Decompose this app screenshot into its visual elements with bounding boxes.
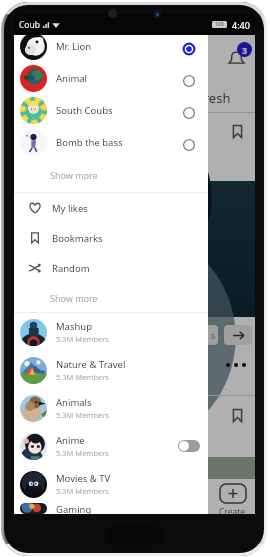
staticText: Fresh	[197, 89, 231, 107]
staticText: Bookmarks	[52, 232, 103, 245]
staticText: Show more	[50, 292, 98, 304]
staticText: Animals	[56, 396, 92, 409]
button[interactable]: Fresh	[191, 85, 237, 111]
button[interactable]: Mr. Lion	[14, 30, 208, 62]
button[interactable]: Nature & Travel	[14, 351, 208, 389]
staticText: Mr. Lion	[56, 40, 92, 53]
button[interactable]: Animal	[14, 62, 208, 94]
button[interactable]: Tags	[192, 325, 218, 345]
staticText: s	[211, 329, 216, 341]
staticText: 4:40	[232, 19, 250, 31]
button[interactable]: Bookmarks	[14, 223, 208, 253]
button[interactable]: Anime	[14, 427, 208, 465]
button[interactable]: Mashup	[14, 313, 208, 351]
staticText: My likes	[52, 202, 88, 215]
button[interactable]: Notifications	[224, 42, 254, 72]
staticText: 3	[242, 44, 248, 56]
staticText: Movies & TV	[56, 472, 111, 485]
staticText: Bomb the bass	[56, 136, 123, 149]
staticText: 5.3M Members	[56, 334, 109, 344]
button[interactable]: More options	[226, 358, 246, 372]
staticText: 5.3M Members	[56, 448, 109, 458]
button[interactable]: South Coubs	[14, 94, 208, 126]
staticText: Nature & Travel	[56, 358, 126, 371]
staticText: South Coubs	[56, 104, 113, 117]
staticText: 5.3M Members	[56, 410, 109, 420]
staticText: Coub	[19, 19, 40, 31]
button[interactable]: Bomb the bass	[14, 126, 208, 158]
staticText: Show more	[50, 169, 98, 181]
button[interactable]: Animals	[14, 389, 208, 427]
staticText: 100	[215, 21, 224, 28]
staticText: Random	[52, 262, 90, 275]
staticText: 5.3M Members	[56, 372, 109, 382]
button[interactable]: Movies & TV	[14, 465, 208, 503]
button[interactable]: Show more	[14, 158, 208, 192]
button[interactable]: Bookmark	[229, 123, 246, 140]
staticText: 5.3M Members	[56, 486, 109, 496]
button[interactable]: Random	[14, 253, 208, 283]
button[interactable]: Bookmark	[229, 407, 246, 424]
button[interactable]: Create	[219, 484, 246, 514]
button[interactable]: Gaming	[14, 503, 208, 514]
staticText: Create	[219, 506, 246, 514]
staticText: Animal	[56, 72, 88, 85]
staticText: Anime	[56, 434, 85, 447]
staticText: Gaming	[56, 503, 92, 514]
button[interactable]: My likes	[14, 193, 208, 223]
button[interactable]: Toggle	[178, 440, 200, 452]
button[interactable]: Next coub	[224, 325, 252, 345]
button[interactable]: Show more	[14, 283, 208, 312]
staticText: Mashup	[56, 320, 93, 333]
